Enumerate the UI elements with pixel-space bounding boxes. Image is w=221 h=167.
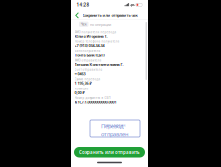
staticText: 1 195,36 ₽ bbox=[74, 81, 91, 86]
staticText: Сохранить или отправить чек bbox=[82, 13, 137, 18]
staticText: ПАО Сбербанк bbox=[105, 124, 125, 127]
staticText: Почта Банк (СБП) bbox=[74, 52, 104, 58]
staticText: +7 (913) 034-34-34 bbox=[74, 43, 104, 48]
button[interactable]: Back bbox=[73, 11, 81, 19]
staticText: Комиссия bbox=[74, 87, 88, 90]
button[interactable]: Сохранить или отправить bbox=[74, 147, 145, 157]
staticText: Чек bbox=[81, 22, 87, 27]
staticText: Номер телефона получателя bbox=[74, 40, 119, 43]
staticText: по операции bbox=[90, 22, 111, 27]
staticText: Банк получателя bbox=[74, 49, 100, 53]
staticText: Татьяна Константиновна Г. bbox=[74, 62, 123, 67]
staticText: Юлия Игоревна Т. bbox=[74, 34, 107, 39]
staticText: 14:28 bbox=[76, 2, 89, 8]
staticText: Номер документа в СБП bbox=[74, 96, 110, 100]
staticText: ФИО получателя перевода bbox=[74, 30, 116, 34]
staticText: ФИО отправителя bbox=[74, 58, 101, 62]
staticText: •• 0463 bbox=[74, 71, 85, 76]
staticText: A1C7-1-0000000000-0001 bbox=[74, 99, 116, 105]
staticText: Сумма перевода bbox=[74, 77, 100, 81]
staticText: Сохранить или отправить bbox=[79, 149, 140, 155]
staticText: 0,00 ₽ bbox=[74, 90, 84, 95]
staticText: Перевод отправлен bbox=[101, 122, 129, 138]
staticText: Счёт отправителя bbox=[74, 68, 102, 72]
